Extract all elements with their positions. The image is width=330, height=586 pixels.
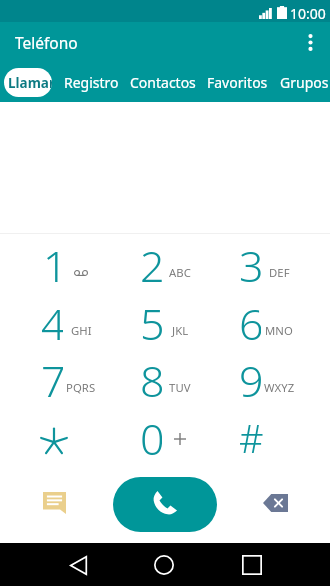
staticText: 1 bbox=[43, 236, 65, 294]
staticText: GHI bbox=[71, 323, 92, 338]
button[interactable]: Grupos bbox=[280, 63, 329, 102]
staticText: 8 bbox=[140, 351, 162, 409]
button[interactable]: Backspace bbox=[255, 482, 296, 523]
button[interactable]: Registro bbox=[64, 63, 119, 102]
button[interactable]: Call bbox=[113, 477, 217, 532]
button[interactable]: 7 bbox=[33, 351, 132, 409]
button[interactable]: 9 bbox=[231, 351, 330, 409]
button[interactable]: 8 bbox=[132, 351, 231, 409]
staticText: PQRS bbox=[66, 380, 96, 395]
button[interactable]: Recents bbox=[232, 545, 272, 585]
button[interactable]: 2 bbox=[132, 236, 231, 294]
staticText: Teléfono bbox=[15, 32, 78, 53]
staticText: 5 bbox=[140, 294, 162, 352]
staticText: MNO bbox=[265, 323, 293, 338]
staticText: 0 bbox=[140, 409, 162, 467]
button[interactable]: 1 bbox=[33, 236, 132, 294]
button[interactable]: Llamar bbox=[4, 68, 52, 97]
staticText: Contactos bbox=[130, 73, 196, 92]
staticText: DEF bbox=[269, 265, 290, 280]
staticText: WXYZ bbox=[264, 380, 295, 395]
staticText: Llamar bbox=[8, 74, 52, 92]
staticText: Grupos bbox=[280, 73, 329, 92]
staticText: 10:00 bbox=[290, 4, 326, 23]
button[interactable]: Home bbox=[144, 545, 184, 585]
button[interactable]: Contactos bbox=[130, 63, 196, 102]
button[interactable]: More options bbox=[290, 23, 330, 63]
staticText: TUV bbox=[169, 380, 191, 395]
button[interactable]: 5 bbox=[132, 294, 231, 352]
staticText: 2 bbox=[140, 236, 162, 294]
staticText: JKL bbox=[172, 323, 189, 338]
staticText: 4 bbox=[41, 294, 63, 352]
staticText: 3 bbox=[239, 236, 261, 294]
button[interactable]: 0 bbox=[132, 409, 231, 467]
button[interactable]: 3 bbox=[231, 236, 330, 294]
staticText: # bbox=[239, 412, 261, 464]
button[interactable]: 4 bbox=[33, 294, 132, 352]
staticText: Favoritos bbox=[207, 73, 268, 92]
button[interactable]: Back bbox=[58, 545, 98, 585]
staticText: ABC bbox=[169, 265, 192, 280]
button[interactable]: # bbox=[231, 409, 330, 467]
button[interactable] bbox=[33, 409, 132, 467]
button[interactable]: Favoritos bbox=[207, 63, 268, 102]
staticText: 6 bbox=[239, 294, 261, 352]
staticText: 7 bbox=[41, 351, 63, 409]
button[interactable]: Message bbox=[34, 482, 75, 523]
staticText: 9 bbox=[239, 351, 261, 409]
button[interactable]: 6 bbox=[231, 294, 330, 352]
staticText: Registro bbox=[64, 73, 119, 92]
